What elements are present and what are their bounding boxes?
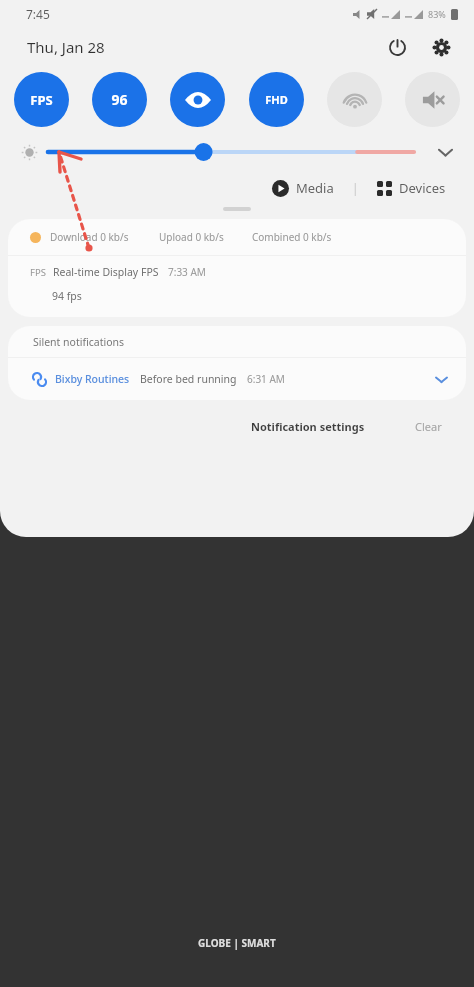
button[interactable]: Notification settings xyxy=(243,414,373,439)
button[interactable]: Settings xyxy=(426,32,456,62)
staticText: 6:31 AM xyxy=(247,372,285,386)
staticText: Thu, Jan 28 xyxy=(27,37,105,57)
staticText: Notification settings xyxy=(251,419,365,434)
button[interactable]: FPS xyxy=(14,72,69,127)
staticText: GLOBE | SMART xyxy=(198,936,276,950)
button[interactable]: Wi-Fi xyxy=(327,72,382,127)
staticText: FPS xyxy=(30,266,46,279)
staticText: FHD xyxy=(265,92,288,107)
staticText: Real-time Display FPS xyxy=(53,265,159,279)
button[interactable]: Mute xyxy=(405,72,460,127)
button[interactable] xyxy=(223,207,251,211)
staticText: Devices xyxy=(399,179,446,197)
staticText: Before bed running xyxy=(140,372,237,386)
staticText: Bixby Routines xyxy=(55,372,130,386)
button[interactable]: Download 0 kb/s xyxy=(8,219,466,255)
button[interactable]: Clear xyxy=(407,414,450,439)
button[interactable]: Eye comfort shield xyxy=(170,72,225,127)
staticText: FPS xyxy=(30,91,53,109)
button[interactable] xyxy=(48,141,414,163)
staticText: 7:33 AM xyxy=(168,265,206,279)
button[interactable]: Expand brightness settings xyxy=(430,139,460,165)
button[interactable]: Power off xyxy=(382,32,412,62)
button[interactable]: FHD resolution xyxy=(249,72,304,127)
staticText: Silent notifications xyxy=(33,335,125,349)
staticText: Combined 0 kb/s xyxy=(252,230,332,244)
staticText: 7:45 xyxy=(26,6,50,22)
staticText: 83% xyxy=(428,8,446,20)
button[interactable]: Silent notifications xyxy=(8,326,466,357)
button[interactable]: Devices xyxy=(373,175,450,201)
button[interactable]: Media xyxy=(268,175,338,201)
button[interactable]: Refresh rate 96Hz xyxy=(92,72,147,127)
staticText: | xyxy=(352,180,359,196)
staticText: Upload 0 kb/s xyxy=(159,230,224,244)
button[interactable]: FPS xyxy=(8,256,466,317)
staticText: Media xyxy=(296,179,334,197)
staticText: 96 xyxy=(111,90,128,109)
staticText: Download 0 kb/s xyxy=(50,230,129,244)
staticText: Clear xyxy=(415,419,442,434)
staticText: 94 fps xyxy=(52,289,82,303)
button[interactable]: Bixby Routines xyxy=(8,358,466,400)
